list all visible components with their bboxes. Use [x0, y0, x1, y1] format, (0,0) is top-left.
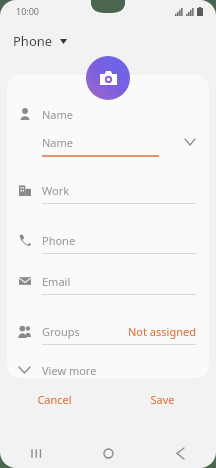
button[interactable]: Phone: [7, 226, 209, 254]
button[interactable]: Back: [144, 438, 216, 468]
button[interactable]: Recent apps: [0, 438, 72, 468]
button[interactable]: Home: [72, 438, 144, 468]
button[interactable]: Save: [108, 388, 216, 410]
staticText: Cancel: [37, 392, 72, 407]
button[interactable]: Groups: [7, 317, 209, 345]
button[interactable]: View more: [7, 362, 209, 378]
staticText: Save: [150, 392, 175, 407]
staticText: Work: [42, 183, 70, 198]
staticText: 10:00: [16, 5, 40, 17]
button[interactable]: Name: [7, 101, 209, 127]
staticText: Phone: [42, 233, 76, 248]
staticText: Groups: [42, 324, 80, 339]
staticText: Phone: [13, 32, 53, 50]
button[interactable]: Email: [7, 267, 209, 295]
button[interactable]: Add contact photo: [86, 56, 130, 100]
staticText: Not assigned: [128, 324, 196, 339]
button[interactable]: Phone: [13, 32, 67, 50]
button[interactable]: Work: [7, 176, 209, 204]
staticText: Email: [42, 274, 71, 289]
button[interactable]: Cancel: [0, 388, 108, 410]
button[interactable]: Name: [7, 127, 209, 157]
staticText: View more: [42, 363, 97, 378]
staticText: Name: [42, 135, 74, 150]
staticText: Name: [42, 107, 74, 122]
